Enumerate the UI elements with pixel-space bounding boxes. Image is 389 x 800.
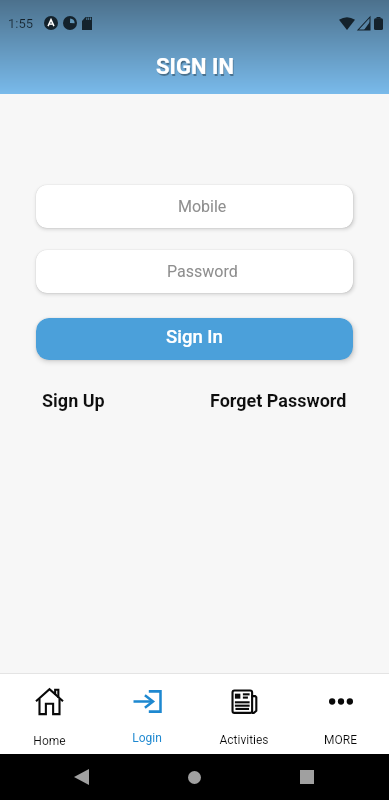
button[interactable]: Activities [195,674,292,754]
button[interactable]: Login [98,674,195,754]
staticText: Login [132,731,162,745]
other: Login [132,690,162,713]
button[interactable]: Home [178,761,210,793]
staticText: Home [33,734,66,748]
button[interactable]: Forget Password [210,390,347,411]
button[interactable]: Home [0,674,98,754]
staticText: Password [167,262,238,281]
button[interactable]: Sign Up [42,390,105,411]
staticText: Sign In [166,326,223,348]
staticText: 1:55 [8,16,34,31]
staticText: MORE [324,733,357,747]
staticText: SIGN IN [157,56,235,82]
button[interactable]: Recents [291,761,323,793]
button[interactable]: Password [36,250,353,293]
other: More [326,688,356,715]
button[interactable]: Mobile [36,185,353,228]
staticText: Mobile [178,197,227,216]
staticText: SIGN IN [156,54,234,80]
staticText: Activities [219,733,269,747]
button[interactable]: Sign In [36,318,353,360]
staticText: Sign Up [42,390,105,411]
staticText: Forget Password [210,390,347,411]
button[interactable]: More [292,674,389,754]
button[interactable]: Back [65,761,97,793]
